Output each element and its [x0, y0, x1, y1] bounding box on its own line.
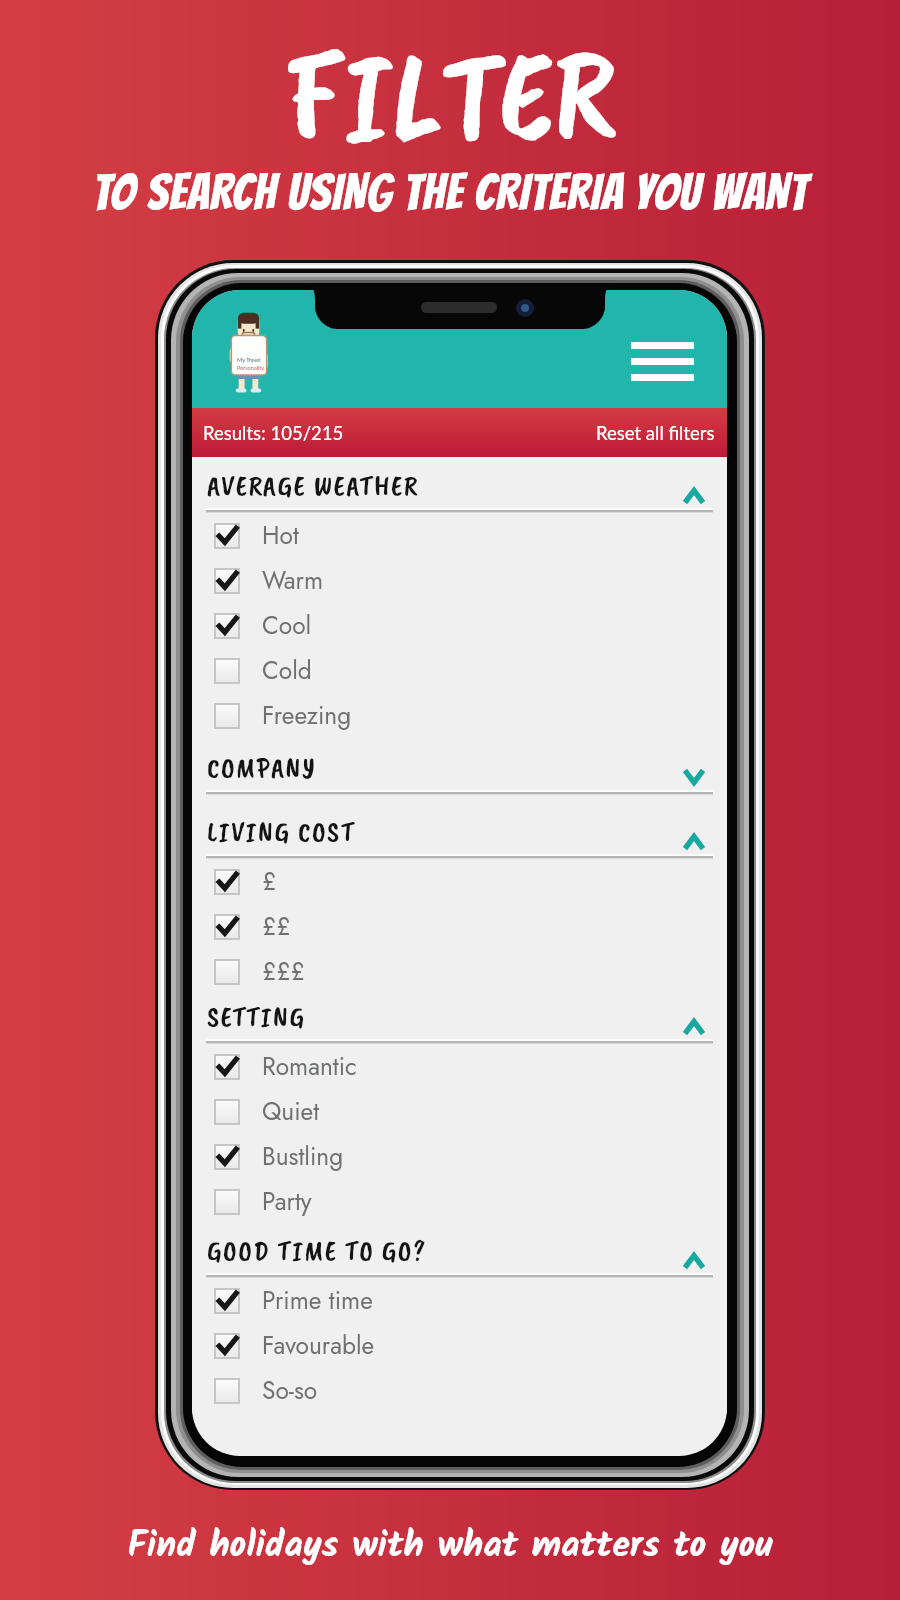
staticText: Reset all filters: [596, 422, 715, 444]
button[interactable]: SETTING: [192, 994, 727, 1044]
staticText: FILTER: [283, 14, 617, 177]
staticText: GOOD TIME TO GO?: [207, 1233, 427, 1268]
button[interactable]: So-so: [192, 1368, 727, 1413]
staticText: TO SEARCH USING THE CRITERIA YOU WANT: [92, 166, 808, 219]
button[interactable]: Cool: [192, 603, 727, 648]
button[interactable]: Freezing: [192, 693, 727, 738]
staticText: Warm: [262, 563, 324, 598]
staticText: So-so: [262, 1373, 318, 1408]
button[interactable]: Quiet: [192, 1089, 727, 1134]
staticText: Hot: [262, 518, 299, 553]
button[interactable]: Hot: [192, 513, 727, 558]
button[interactable]: ££: [192, 904, 727, 949]
staticText: Cool: [262, 608, 312, 643]
button[interactable]: Prime time: [192, 1278, 727, 1323]
staticText: Freezing: [262, 698, 352, 733]
button[interactable]: Reset all filters: [596, 422, 715, 444]
staticText: Bustling: [262, 1139, 344, 1174]
staticText: SETTING: [207, 999, 306, 1034]
staticText: Quiet: [262, 1094, 320, 1129]
staticText: Romantic: [262, 1049, 357, 1084]
button[interactable]: COMPANY: [192, 738, 727, 795]
button[interactable]: Party: [192, 1179, 727, 1224]
staticText: Favourable: [262, 1328, 375, 1363]
staticText: COMPANY: [207, 750, 317, 785]
button[interactable]: Cold: [192, 648, 727, 693]
staticText: Find holidays with what matters to you: [127, 1518, 773, 1575]
button[interactable]: Bustling: [192, 1134, 727, 1179]
button[interactable]: Favourable: [192, 1323, 727, 1368]
staticText: Party: [262, 1184, 312, 1219]
button[interactable]: My Travel Personality logo: [224, 311, 273, 393]
staticText: Cold: [262, 653, 312, 688]
staticText: ££: [262, 909, 291, 944]
staticText: Personality: [237, 364, 265, 371]
button[interactable]: GOOD TIME TO GO?: [192, 1224, 727, 1278]
button[interactable]: Romantic: [192, 1044, 727, 1089]
button[interactable]: £: [192, 859, 727, 904]
button[interactable]: AVERAGE WEATHER: [192, 457, 727, 513]
button[interactable]: Warm: [192, 558, 727, 603]
button[interactable]: LIVING COST: [192, 795, 727, 859]
staticText: £££: [262, 954, 305, 989]
staticText: LIVING COST: [207, 814, 356, 849]
button[interactable]: £££: [192, 949, 727, 994]
button[interactable]: Open menu: [631, 339, 697, 381]
staticText: £: [262, 864, 277, 899]
staticText: Prime time: [262, 1283, 373, 1318]
staticText: Results: 105/215: [203, 422, 344, 444]
staticText: AVERAGE WEATHER: [207, 468, 420, 503]
staticText: My Travel: [237, 356, 261, 363]
